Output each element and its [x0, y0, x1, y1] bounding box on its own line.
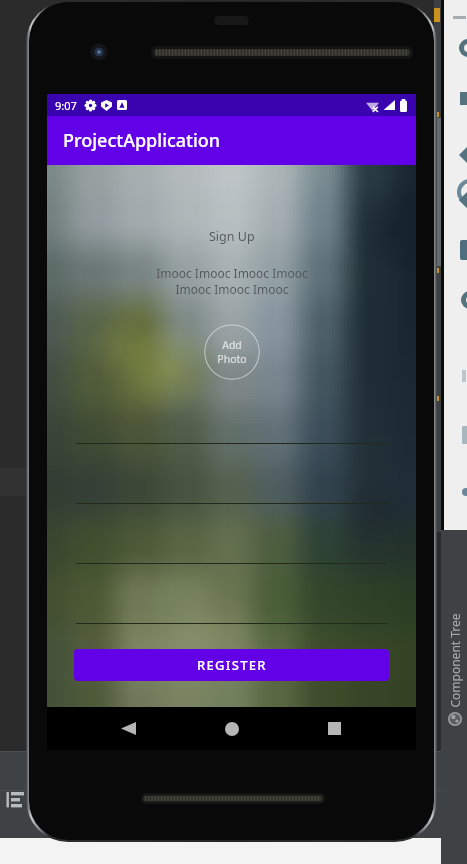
button[interactable]: Recents — [313, 707, 356, 750]
staticText: Sign Up — [209, 228, 255, 245]
staticText: Add Photo — [217, 338, 247, 366]
staticText: REGISTER — [197, 656, 267, 674]
button[interactable]: Home — [210, 707, 253, 750]
button[interactable]: Add Photo — [204, 324, 260, 380]
button[interactable]: REGISTER — [74, 649, 389, 681]
button[interactable]: Back — [107, 707, 150, 750]
staticText: Imooc Imooc Imooc Imooc Imooc Imooc Imoo… — [156, 265, 308, 298]
staticText: ProjectApplication — [63, 128, 221, 153]
staticText: 9:07 — [55, 98, 77, 113]
